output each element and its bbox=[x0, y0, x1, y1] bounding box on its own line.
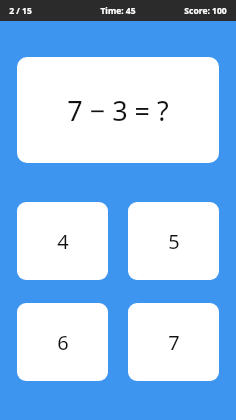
staticText: 7 − 3 = ? bbox=[67, 92, 169, 129]
staticText: Time: 45 bbox=[100, 5, 136, 17]
staticText: 5 bbox=[168, 228, 180, 255]
button[interactable]: 6 bbox=[17, 303, 108, 381]
staticText: 7 bbox=[168, 329, 180, 356]
staticText: 2 / 15 bbox=[9, 5, 32, 17]
button[interactable]: 7 − 3 = ? bbox=[17, 57, 219, 163]
button[interactable]: 7 bbox=[128, 303, 219, 381]
button[interactable]: 4 bbox=[17, 202, 108, 280]
staticText: 4 bbox=[57, 228, 69, 255]
button[interactable]: 5 bbox=[128, 202, 219, 280]
staticText: 6 bbox=[57, 329, 69, 356]
staticText: Score: 100 bbox=[184, 5, 227, 17]
